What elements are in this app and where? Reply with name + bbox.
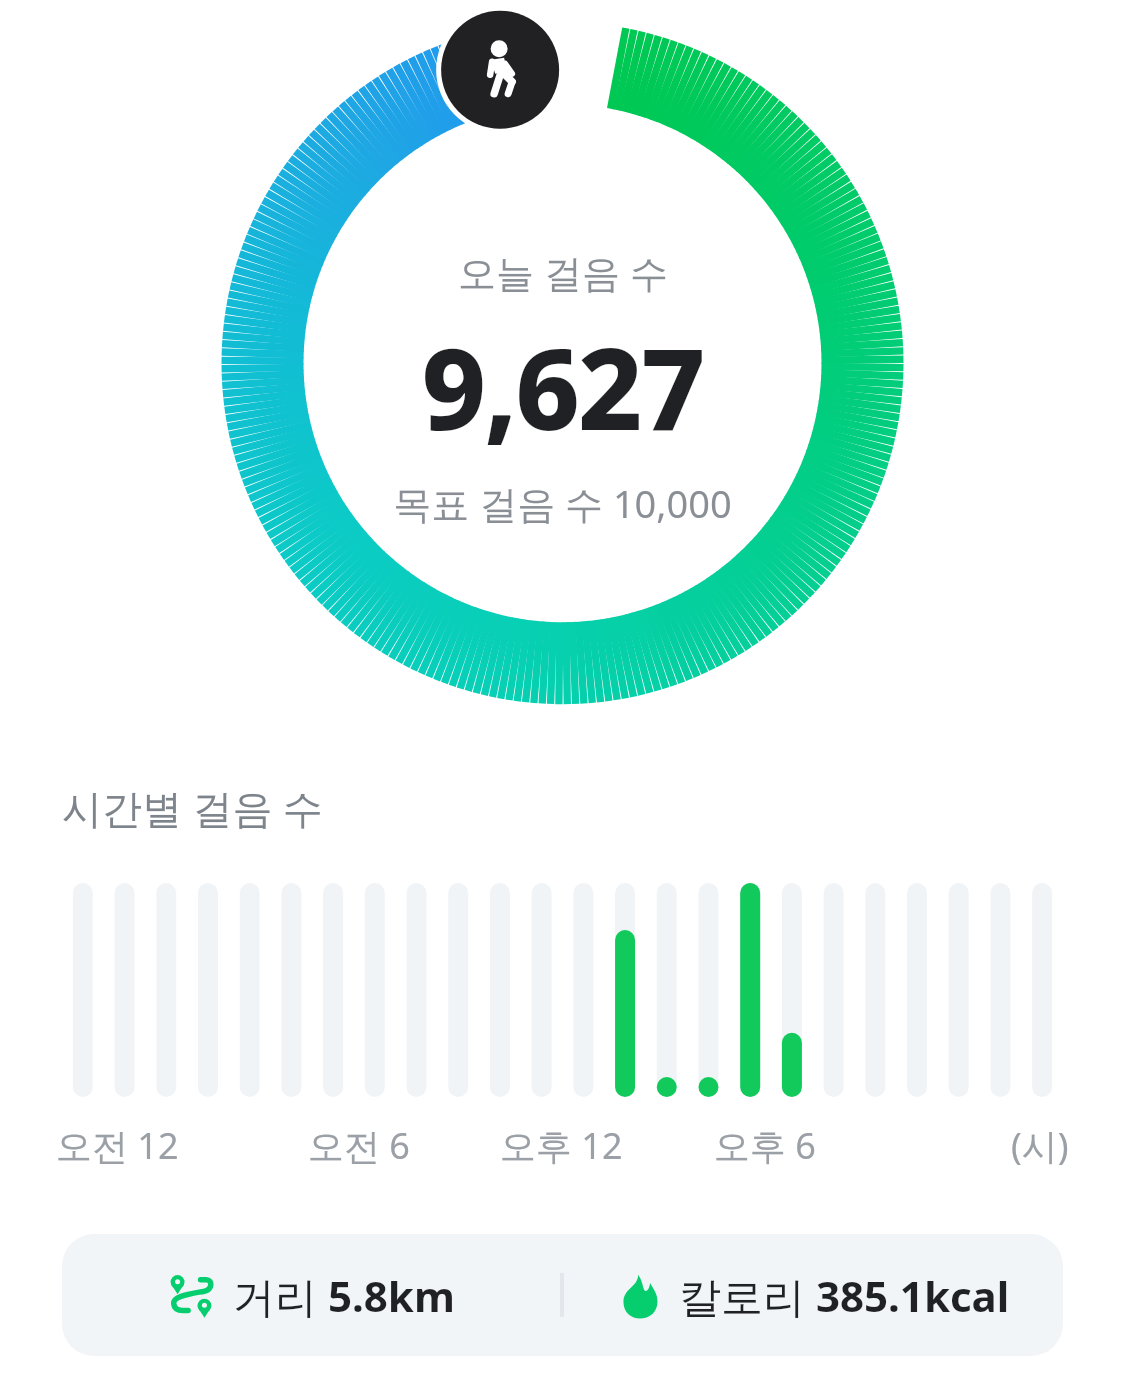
staticText: 목표 걸음 수 10,000 (393, 477, 732, 529)
staticText: (시) (1011, 1121, 1069, 1170)
button[interactable]: 거리 (62, 1234, 1063, 1356)
staticText: 5.8km (328, 1267, 455, 1324)
staticText: 거리 (233, 1267, 328, 1324)
staticText: 오전 6 (308, 1121, 410, 1170)
staticText: 오후 6 (714, 1121, 816, 1170)
staticText: 시간별 걸음 수 (62, 780, 323, 835)
button[interactable] (62, 883, 1063, 1097)
staticText: 칼로리 (679, 1267, 816, 1324)
staticText: 385.1kcal (816, 1267, 1010, 1324)
staticText: 오늘 걸음 수 (458, 246, 668, 298)
staticText: 9,627 (421, 310, 704, 463)
button[interactable]: 오늘 걸음 수 (0, 0, 1125, 736)
staticText: 오전 12 (56, 1121, 179, 1170)
staticText: 오후 12 (500, 1121, 623, 1170)
